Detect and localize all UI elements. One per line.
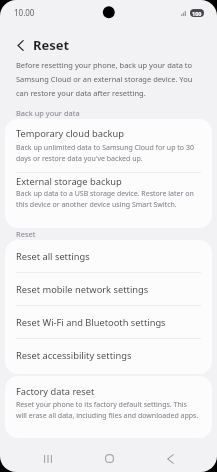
- staticText: Reset: [33, 36, 70, 54]
- staticText: Reset Wi-Fi and Bluetooth settings: [16, 316, 166, 329]
- button[interactable]: External storage backup: [5, 173, 212, 228]
- staticText: Reset: [16, 229, 36, 239]
- staticText: 100: [192, 10, 202, 17]
- staticText: Reset mobile network settings: [16, 283, 149, 296]
- staticText: Temporary cloud backup: [16, 127, 124, 140]
- button[interactable]: Back: [153, 445, 187, 472]
- button[interactable]: Home: [92, 445, 126, 472]
- button[interactable]: Reset mobile network settings: [5, 273, 212, 305]
- staticText: 10.00: [14, 7, 35, 18]
- button[interactable]: Temporary cloud backup: [5, 119, 212, 172]
- staticText: External storage backup: [16, 175, 122, 188]
- staticText: Before resetting your phone, back up you…: [16, 60, 203, 98]
- staticText: Back up unlimited data to Samsung Cloud …: [16, 143, 199, 163]
- button[interactable]: Factory data reset: [5, 376, 212, 438]
- button[interactable]: Back: [10, 35, 31, 56]
- staticText: Reset all settings: [16, 250, 90, 263]
- button[interactable]: Reset all settings: [5, 240, 212, 272]
- button[interactable]: Recent apps: [31, 445, 65, 472]
- staticText: Factory data reset: [16, 385, 95, 398]
- button[interactable]: Reset Wi-Fi and Bluetooth settings: [5, 306, 212, 338]
- staticText: Back up your data: [16, 108, 80, 118]
- staticText: Back up data to a USB storage device. Re…: [16, 189, 199, 209]
- button[interactable]: Reset accessibility settings: [5, 339, 212, 371]
- staticText: Reset accessibility settings: [16, 349, 132, 362]
- staticText: Reset your phone to its factory default …: [16, 400, 199, 420]
